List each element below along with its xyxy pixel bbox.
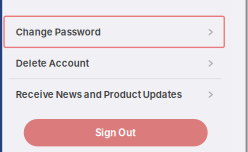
staticText: Receive News and Product Updates xyxy=(16,89,182,100)
button[interactable]: Change Password xyxy=(5,16,232,48)
button[interactable]: Delete Account xyxy=(5,48,232,79)
staticText: Delete Account xyxy=(16,58,89,69)
button[interactable]: Receive News and Product Updates xyxy=(5,79,232,110)
staticText: Change Password xyxy=(16,26,101,38)
staticText: Sign Out xyxy=(95,127,136,139)
button[interactable]: Sign Out xyxy=(24,119,208,146)
